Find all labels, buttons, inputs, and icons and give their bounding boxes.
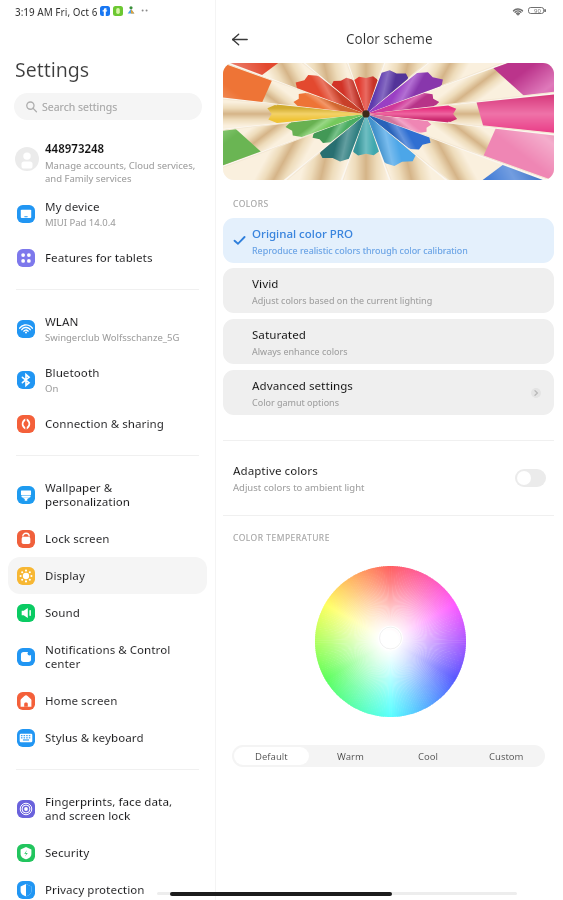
staticText: Sound	[45, 605, 80, 621]
button[interactable]: Home screen	[8, 682, 207, 719]
staticText: Cool	[418, 750, 438, 763]
staticText: Wallpaper & personalization	[45, 480, 131, 509]
staticText: Reproduce realistic colors through color…	[252, 244, 468, 256]
button[interactable]: Notifications & Control center	[8, 631, 207, 682]
staticText: On	[45, 382, 59, 395]
button[interactable]: Advanced settings	[223, 370, 554, 415]
staticText: Always enhance colors	[252, 345, 348, 357]
button[interactable]: My device	[8, 188, 207, 239]
staticText: Warm	[337, 750, 364, 763]
staticText: Bluetooth	[45, 365, 100, 381]
button[interactable]: Adaptive colors toggle	[515, 469, 546, 487]
staticText: Swingerclub Wolfsschanze_5G	[45, 331, 180, 344]
staticText: COLOR TEMPERATURE	[233, 532, 330, 544]
button[interactable]: Custom	[469, 747, 543, 765]
staticText: Custom	[489, 750, 524, 763]
button[interactable]: WLAN	[8, 303, 207, 354]
staticText: My device	[45, 199, 100, 215]
button[interactable]: Cool	[391, 747, 465, 765]
staticText: Adjust colors based on the current light…	[252, 294, 433, 306]
staticText: Advanced settings	[252, 378, 353, 394]
staticText: and Family services	[45, 172, 132, 185]
staticText: Original color PRO	[252, 226, 354, 242]
staticText: Fingerprints, face data, and screen lock	[45, 794, 173, 823]
staticText: Lock screen	[45, 531, 110, 547]
button[interactable]: Original color PRO	[223, 218, 554, 263]
staticText: COLORS	[233, 198, 269, 210]
button[interactable]: Saturated	[223, 319, 554, 364]
button[interactable]: Fingerprints, face data, and screen lock	[8, 783, 207, 834]
staticText: Display	[45, 568, 85, 584]
staticText: Features for tablets	[45, 250, 153, 266]
staticText: Color gamut options	[252, 396, 339, 408]
button[interactable]: Search settings	[14, 93, 202, 120]
staticText: Adjust colors to ambient light	[233, 481, 365, 494]
button[interactable]: Features for tablets	[8, 239, 207, 276]
button[interactable]: Warm	[313, 747, 387, 765]
staticText: Default	[255, 750, 288, 763]
staticText: 90	[534, 7, 541, 14]
button[interactable]: Bluetooth	[8, 354, 207, 405]
staticText: Color scheme	[346, 30, 433, 48]
staticText: Security	[45, 845, 90, 861]
button[interactable]: Display	[8, 557, 207, 594]
button[interactable]: Sound	[8, 594, 207, 631]
staticText: Vivid	[252, 276, 279, 292]
staticText: Home screen	[45, 693, 118, 709]
staticText: Settings	[15, 56, 90, 83]
staticText: Notifications & Control center	[45, 642, 171, 671]
button[interactable]: Default	[234, 747, 309, 765]
button[interactable]: Back	[226, 26, 252, 52]
staticText: Connection & sharing	[45, 416, 164, 432]
button[interactable]: Wallpaper & personalization	[8, 469, 207, 520]
staticText: 448973248	[45, 141, 105, 157]
button[interactable]: Connection & sharing	[8, 405, 207, 442]
button[interactable]: Lock screen	[8, 520, 207, 557]
button[interactable]: Security	[8, 834, 207, 871]
button[interactable]: Privacy protection	[8, 871, 207, 900]
staticText: MIUI Pad 14.0.4	[45, 216, 116, 229]
staticText: Saturated	[252, 327, 306, 343]
staticText: WLAN	[45, 314, 79, 330]
staticText: Adaptive colors	[233, 463, 318, 479]
button[interactable]: 448973248	[0, 136, 215, 184]
staticText: Search settings	[42, 100, 118, 114]
button[interactable]: Vivid	[223, 268, 554, 313]
staticText: 3:19 AM Fri, Oct 6	[15, 5, 98, 18]
staticText: Stylus & keyboard	[45, 730, 144, 746]
button[interactable]: Adaptive colors	[216, 446, 563, 510]
staticText: Privacy protection	[45, 882, 145, 898]
button[interactable]: Stylus & keyboard	[8, 719, 207, 756]
staticText: Manage accounts, Cloud services,	[45, 159, 196, 172]
